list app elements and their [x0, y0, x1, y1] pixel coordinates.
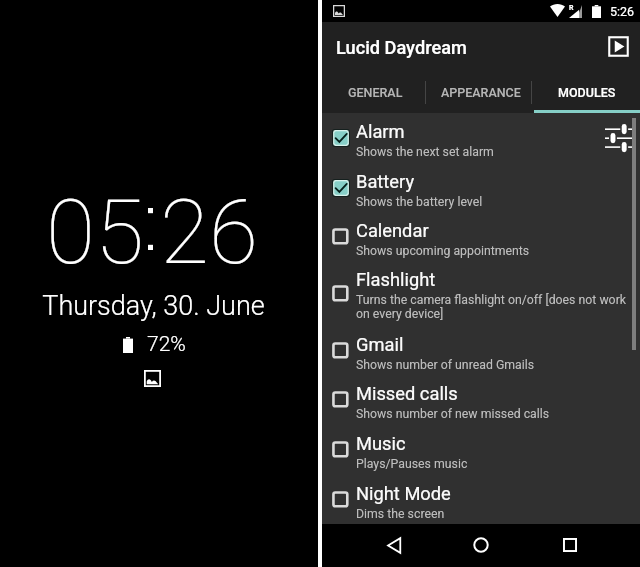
button[interactable]: Battery [322, 165, 640, 210]
staticText: 5:26 [610, 4, 635, 19]
button[interactable]: MODULES [534, 75, 640, 113]
staticText: APPEARANCE [441, 85, 521, 100]
button[interactable]: Home [461, 525, 501, 565]
staticText: 05 [46, 180, 144, 285]
staticText: Thursday, 30. June [42, 290, 265, 322]
staticText: Alarm [356, 121, 405, 142]
button[interactable]: Calendar [322, 214, 640, 259]
staticText: GENERAL [348, 85, 403, 100]
button[interactable]: Music [322, 427, 640, 472]
staticText: Turns the camera flashlight on/off [does… [356, 293, 630, 321]
button[interactable]: Flashlight [322, 263, 640, 325]
button[interactable]: Alarm module settings [605, 124, 633, 152]
button[interactable]: Recent apps [550, 525, 590, 565]
button[interactable]: Preview daydream [601, 29, 635, 63]
staticText: Dims the screen [356, 507, 630, 521]
staticText: Night Mode [356, 483, 451, 504]
staticText: 72% [147, 332, 186, 357]
button[interactable]: GENERAL [322, 75, 428, 113]
staticText: 26 [160, 180, 258, 285]
staticText: Missed calls [356, 383, 458, 404]
staticText: Shows number of new missed calls [356, 407, 630, 421]
button[interactable]: APPEARANCE [428, 75, 534, 113]
staticText: Shows upcoming appointments [356, 244, 630, 258]
staticText: Gmail [356, 334, 404, 355]
staticText: Calendar [356, 220, 429, 241]
button[interactable]: Night Mode [322, 477, 640, 522]
button[interactable]: Back [374, 525, 414, 565]
staticText: Shows number of unread Gmails [356, 358, 630, 372]
staticText: Flashlight [356, 269, 436, 290]
staticText: Shows the next set alarm [356, 145, 630, 159]
staticText: Shows the battery level [356, 195, 630, 209]
staticText: Plays/Pauses music [356, 457, 630, 471]
staticText: Lucid Daydream [336, 37, 467, 58]
button[interactable]: Missed calls [322, 377, 640, 422]
button[interactable]: Gmail [322, 328, 640, 373]
staticText: Music [356, 433, 406, 454]
staticText: MODULES [558, 85, 616, 100]
staticText: R [569, 4, 574, 12]
staticText: Battery [356, 171, 415, 192]
button[interactable]: Alarm [322, 115, 640, 160]
